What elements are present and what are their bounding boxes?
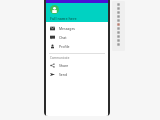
button[interactable]: Screenshot [113,22,124,26]
button[interactable]: Home [113,34,124,38]
staticText: Full name here [50,16,77,20]
button[interactable]: Power [113,2,124,6]
button[interactable]: Profile [46,42,108,51]
staticText: Profile [59,44,70,49]
button[interactable]: Share [46,61,108,70]
button[interactable]: Overview [113,38,124,42]
staticText: Chat [59,35,67,40]
button[interactable]: Send [46,70,108,79]
button[interactable]: Messages [46,24,108,33]
button[interactable]: Back [113,30,124,34]
button[interactable]: Profile photo [50,5,59,14]
button[interactable]: Volume down [113,10,124,14]
staticText: Messages [59,26,75,31]
button[interactable]: Volume up [113,6,124,10]
button[interactable]: Rotate right [113,18,124,22]
button[interactable]: Chat [46,33,108,42]
staticText: Share [59,63,69,68]
staticText: Send [59,72,68,77]
button[interactable]: Zoom [113,26,124,30]
button[interactable]: More [113,42,124,46]
button[interactable]: Rotate left [113,14,124,18]
staticText: Communicate [50,56,70,60]
